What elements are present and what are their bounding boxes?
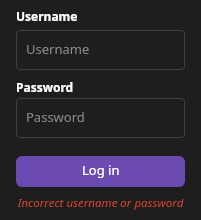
button[interactable]: Username <box>16 30 185 70</box>
staticText: Username <box>26 40 90 58</box>
staticText: Log in <box>82 161 120 179</box>
staticText: Username <box>16 8 78 24</box>
staticText: Incorrect username or password <box>16 195 185 211</box>
staticText: Password <box>26 108 85 126</box>
button[interactable]: Password <box>16 98 185 138</box>
staticText: Password <box>16 79 74 95</box>
button[interactable]: Log in <box>16 156 185 187</box>
